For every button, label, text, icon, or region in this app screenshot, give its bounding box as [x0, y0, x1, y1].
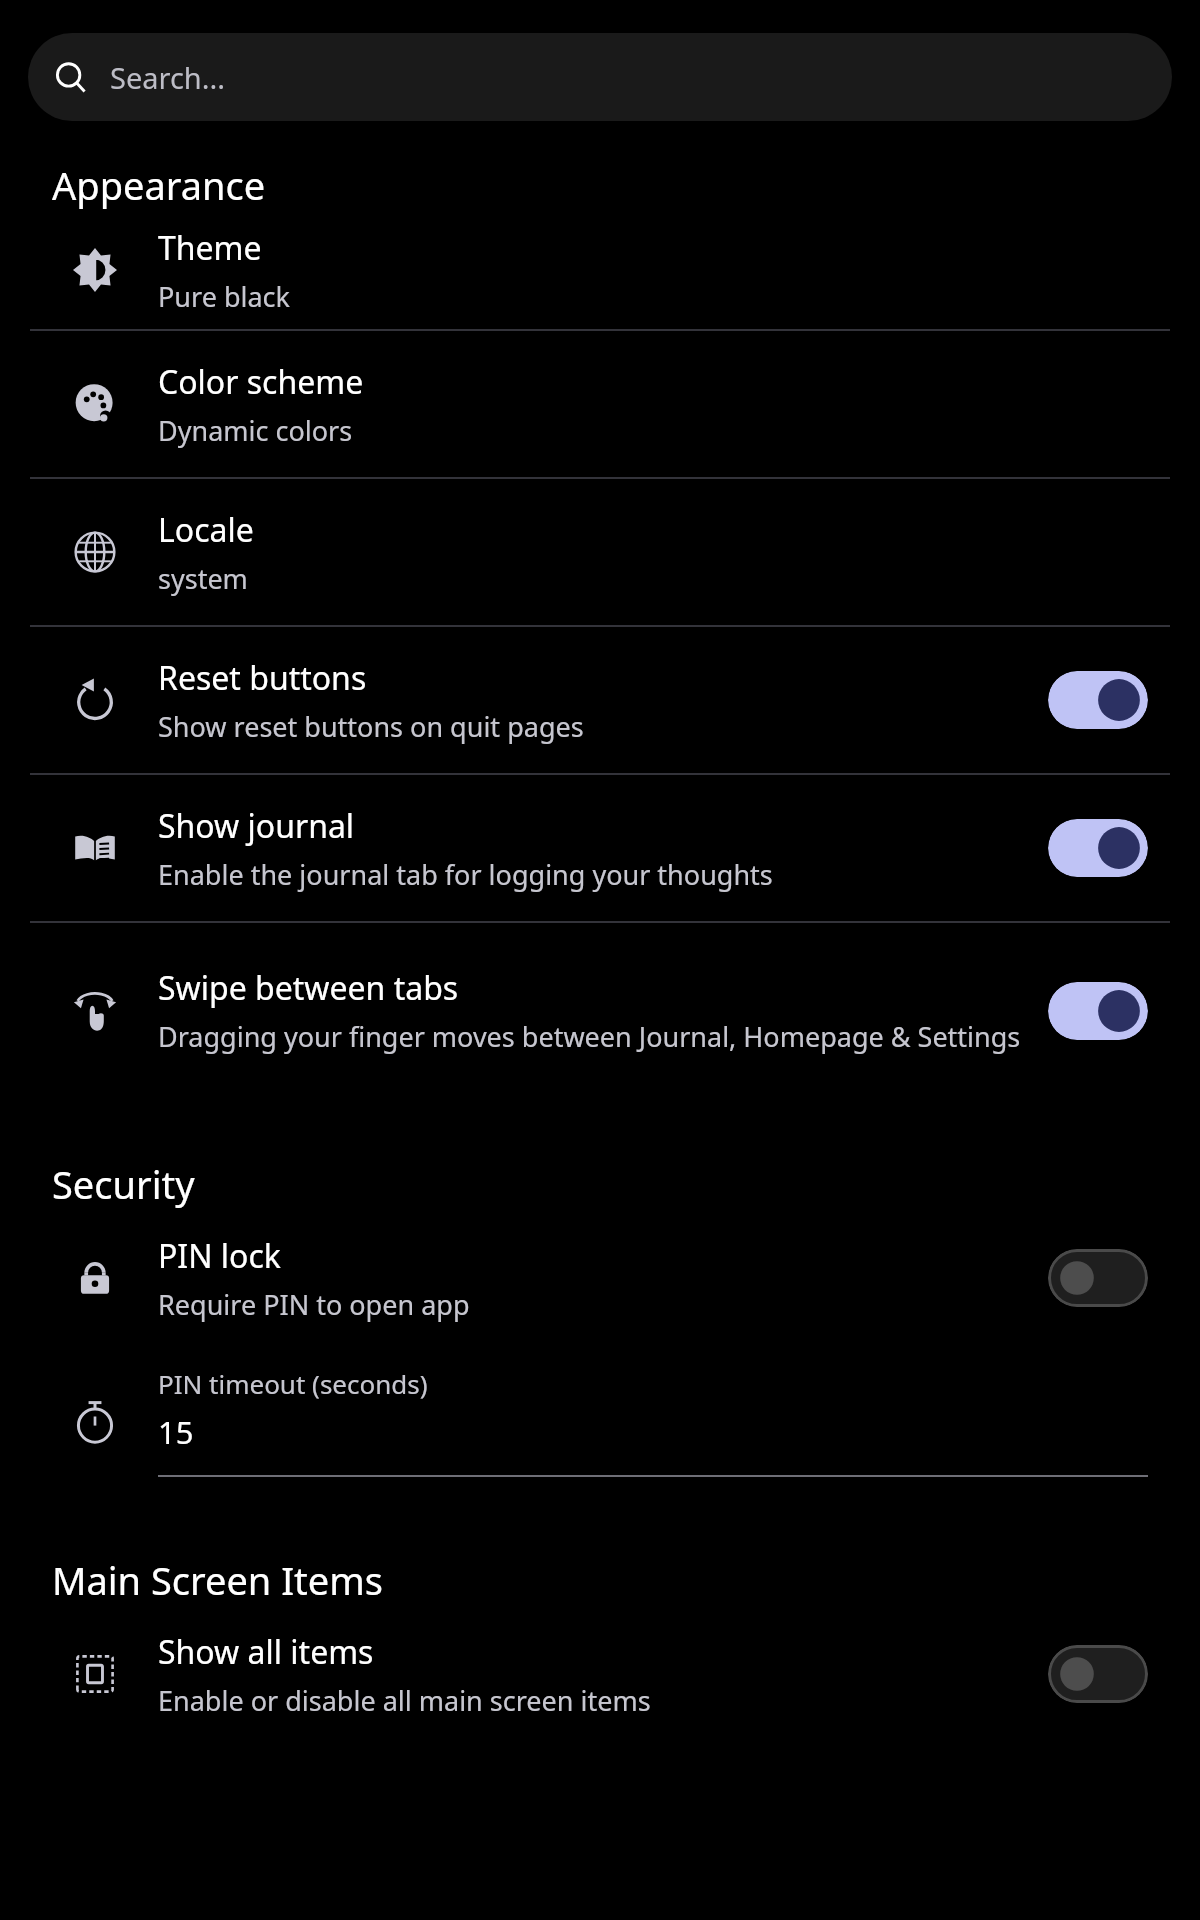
staticText: Search...: [110, 58, 226, 97]
staticText: Show reset buttons on quit pages: [158, 708, 584, 745]
staticText: Color scheme: [158, 360, 364, 404]
staticText: Swipe between tabs: [158, 966, 459, 1010]
staticText: Enable or disable all main screen items: [158, 1682, 651, 1719]
staticText: Dragging your finger moves between Journ…: [158, 1018, 1021, 1055]
button[interactable]: Toggle on: [1048, 671, 1148, 729]
staticText: PIN lock: [158, 1234, 281, 1278]
button[interactable]: Color scheme: [0, 331, 1200, 477]
staticText: Reset buttons: [158, 656, 367, 700]
staticText: Dynamic colors: [158, 412, 353, 449]
staticText: PIN timeout (seconds): [158, 1366, 428, 1401]
button[interactable]: PIN lock: [0, 1210, 1200, 1346]
button[interactable]: Show journal: [0, 775, 1200, 921]
staticText: Pure black: [158, 278, 290, 315]
button[interactable]: Theme: [0, 211, 1200, 329]
staticText: Theme: [158, 226, 262, 270]
staticText: Locale: [158, 508, 254, 552]
staticText: Show journal: [158, 804, 355, 848]
button[interactable]: Search...: [28, 33, 1172, 121]
staticText: Security: [52, 1158, 195, 1210]
button[interactable]: Toggle on: [1048, 982, 1148, 1040]
button[interactable]: Reset buttons: [0, 627, 1200, 773]
button[interactable]: Show all items: [0, 1606, 1200, 1742]
button[interactable]: Toggle on: [1048, 819, 1148, 877]
button[interactable]: Toggle off: [1048, 1645, 1148, 1703]
staticText: Show all items: [158, 1630, 374, 1674]
button[interactable]: Locale: [0, 479, 1200, 625]
staticText: Require PIN to open app: [158, 1286, 470, 1323]
staticText: 15: [158, 1411, 194, 1453]
staticText: Appearance: [52, 159, 266, 211]
button[interactable]: PIN timeout (seconds): [0, 1346, 1200, 1496]
staticText: Main Screen Items: [52, 1554, 383, 1606]
staticText: system: [158, 560, 248, 597]
staticText: Enable the journal tab for logging your …: [158, 856, 773, 893]
button[interactable]: Swipe between tabs: [0, 923, 1200, 1098]
button[interactable]: Toggle off: [1048, 1249, 1148, 1307]
